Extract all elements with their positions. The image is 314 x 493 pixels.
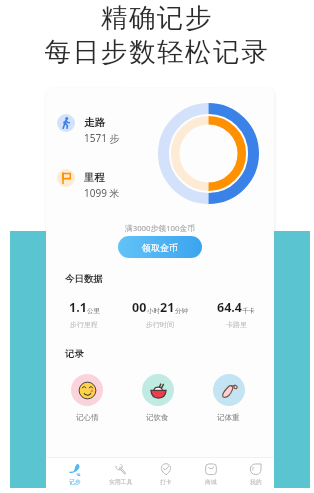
staticText: 卡路里 — [226, 320, 247, 329]
button[interactable]: 实用工具 — [98, 457, 143, 493]
staticText: 步行里程 — [70, 320, 98, 329]
staticText: 1.1 — [69, 299, 87, 316]
staticText: 满3000步领100金币 — [46, 223, 274, 234]
staticText: 每日步数轻松记录 — [0, 35, 314, 68]
staticText: 64.4 — [217, 299, 242, 316]
button[interactable]: 打卡 — [143, 457, 188, 493]
button[interactable]: 记饮食 — [122, 374, 193, 422]
staticText: 步行时间 — [146, 320, 174, 329]
button[interactable]: 记心情 — [52, 374, 122, 422]
staticText: 00 — [132, 299, 147, 316]
button[interactable]: 领取金币 — [118, 236, 202, 258]
button[interactable]: 记体重 — [193, 374, 264, 422]
staticText: 分钟 — [175, 307, 188, 315]
staticText: 记录 — [65, 348, 84, 360]
button[interactable]: 走路 — [57, 116, 120, 145]
staticText: 打卡 — [160, 478, 172, 485]
staticText: 21 — [160, 299, 175, 316]
button[interactable]: 记步 — [52, 457, 98, 493]
button[interactable]: 我的 — [233, 457, 278, 493]
staticText: 记步 — [69, 478, 81, 485]
staticText: 实用工具 — [109, 478, 133, 485]
staticText: 记体重 — [217, 413, 240, 422]
staticText: 我的 — [250, 478, 262, 485]
button[interactable]: 商城 — [188, 457, 233, 493]
staticText: 走路 — [84, 116, 105, 129]
staticText: 领取金币 — [142, 242, 178, 253]
staticText: 今日数据 — [65, 273, 103, 285]
staticText: 精确记步 — [0, 1, 314, 34]
staticText: 千卡 — [242, 307, 255, 315]
staticText: 小时 — [147, 307, 160, 315]
staticText: 公里 — [87, 307, 100, 315]
staticText: 记饮食 — [146, 413, 169, 422]
staticText: 记心情 — [76, 413, 99, 422]
staticText: 商城 — [205, 478, 217, 485]
staticText: 里程 — [84, 171, 105, 184]
staticText: 1571 步 — [84, 131, 120, 145]
button[interactable]: 里程 — [57, 171, 120, 200]
staticText: 1099 米 — [84, 186, 120, 200]
